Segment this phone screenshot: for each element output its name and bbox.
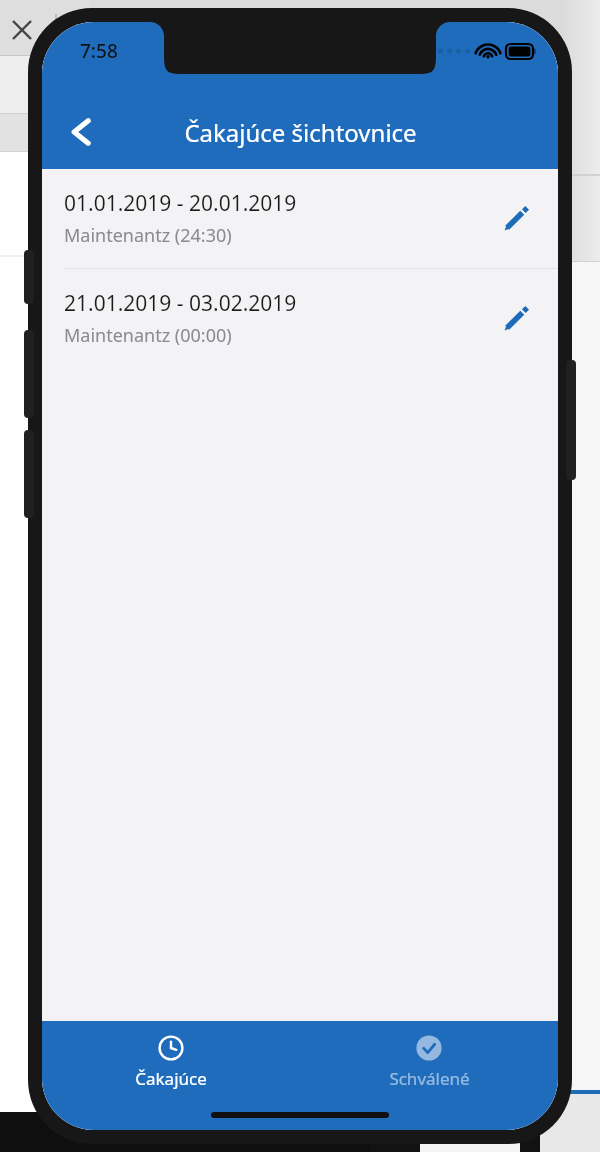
- button[interactable]: 21.01.2019 - 03.02.2019: [42, 269, 558, 368]
- staticText: Schválené: [389, 1067, 470, 1090]
- staticText: Čakajúce šichtovnice: [184, 116, 417, 149]
- staticText: 7:58: [80, 38, 118, 64]
- staticText: 01.01.2019 - 20.01.2019: [64, 189, 297, 218]
- button[interactable]: 01.01.2019 - 20.01.2019: [42, 169, 558, 268]
- staticText: 21.01.2019 - 03.02.2019: [64, 289, 297, 318]
- button[interactable]: Back: [54, 103, 112, 161]
- staticText: Maintenantz (24:30): [64, 223, 232, 248]
- button[interactable]: Čakajúce: [42, 1031, 300, 1094]
- staticText: Maintenantz (00:00): [64, 323, 232, 348]
- button[interactable]: Edit: [492, 295, 540, 343]
- staticText: Čakajúce: [135, 1067, 207, 1090]
- button[interactable]: Edit: [492, 195, 540, 243]
- button[interactable]: Schválené: [300, 1031, 558, 1094]
